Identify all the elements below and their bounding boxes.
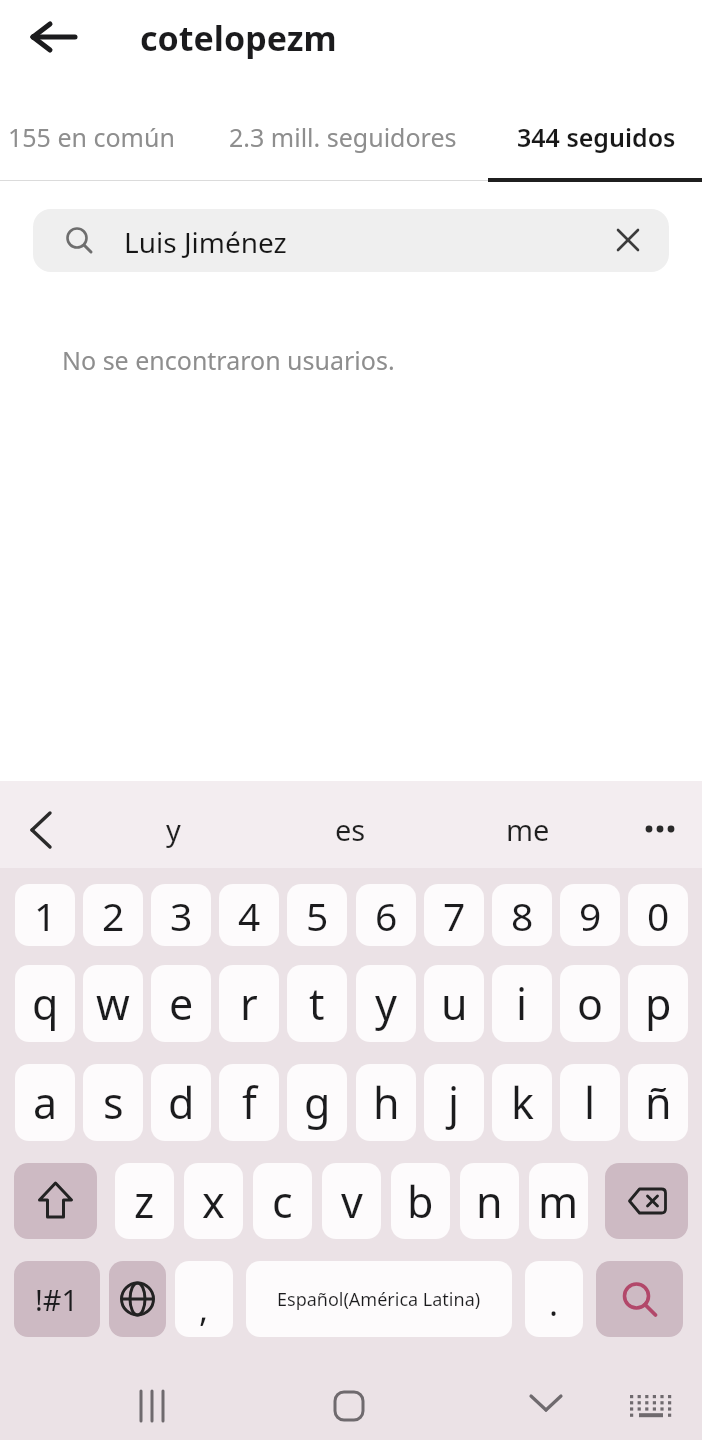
staticText: s xyxy=(103,1073,124,1132)
staticText: es xyxy=(335,810,366,849)
staticText: 8 xyxy=(511,889,534,942)
staticText: a xyxy=(33,1073,58,1132)
button[interactable]: x xyxy=(184,1163,243,1239)
button[interactable]: g xyxy=(287,1064,347,1141)
staticText: p xyxy=(645,974,672,1033)
staticText: ñ xyxy=(645,1073,672,1132)
button[interactable]: t xyxy=(287,965,347,1042)
staticText: d xyxy=(168,1073,195,1132)
button[interactable]: 8 xyxy=(492,884,552,946)
button[interactable]: a xyxy=(15,1064,75,1141)
button[interactable] xyxy=(33,209,669,272)
staticText: , xyxy=(199,1286,209,1332)
button[interactable]: 5 xyxy=(287,884,347,946)
button[interactable]: 1 xyxy=(15,884,75,946)
staticText: o xyxy=(577,974,604,1033)
staticText: 2 xyxy=(102,889,125,942)
button[interactable]: h xyxy=(356,1064,416,1141)
button[interactable]: 155 en común xyxy=(0,107,251,167)
button[interactable]: . xyxy=(525,1261,583,1337)
staticText: y xyxy=(166,810,181,849)
button[interactable]: e xyxy=(151,965,211,1042)
staticText: !#1 xyxy=(35,1280,79,1319)
staticText: g xyxy=(304,1073,331,1132)
button[interactable]: Español(América Latina) xyxy=(246,1261,512,1337)
button[interactable] xyxy=(30,811,52,849)
staticText: . xyxy=(549,1280,559,1326)
button[interactable]: o xyxy=(560,965,620,1042)
button[interactable]: s xyxy=(83,1064,143,1141)
staticText: 4 xyxy=(238,889,261,942)
button[interactable]: i xyxy=(492,965,552,1042)
button[interactable]: 2 xyxy=(83,884,143,946)
button[interactable]: me xyxy=(368,799,688,859)
staticText: w xyxy=(96,974,130,1033)
button[interactable]: k xyxy=(492,1064,552,1141)
staticText: c xyxy=(272,1172,293,1231)
staticText: Luis Jiménez xyxy=(124,223,287,261)
staticText: 155 en común xyxy=(8,120,175,154)
staticText: y xyxy=(375,974,397,1033)
button[interactable] xyxy=(596,1261,683,1337)
button[interactable] xyxy=(31,22,77,52)
staticText: x xyxy=(202,1172,225,1231)
staticText: cotelopezm xyxy=(140,15,337,61)
button[interactable]: c xyxy=(253,1163,312,1239)
button[interactable]: m xyxy=(529,1163,588,1239)
staticText: 1 xyxy=(34,889,57,942)
button[interactable]: v xyxy=(322,1163,381,1239)
button[interactable] xyxy=(643,822,677,836)
button[interactable]: y xyxy=(356,965,416,1042)
button[interactable]: z xyxy=(115,1163,174,1239)
button[interactable] xyxy=(629,1395,673,1417)
button[interactable]: q xyxy=(15,965,75,1042)
button[interactable]: d xyxy=(151,1064,211,1141)
staticText: 7 xyxy=(443,889,466,942)
button[interactable] xyxy=(14,1163,97,1239)
button[interactable]: p xyxy=(628,965,688,1042)
button[interactable]: ñ xyxy=(628,1064,688,1141)
button[interactable]: 2.3 mill. seguidores xyxy=(183,107,503,167)
button[interactable] xyxy=(529,1393,563,1413)
button[interactable]: y xyxy=(13,799,333,859)
button[interactable]: l xyxy=(560,1064,620,1141)
staticText: l xyxy=(584,1073,596,1132)
button[interactable] xyxy=(136,1389,170,1423)
button[interactable]: 9 xyxy=(560,884,620,946)
staticText: z xyxy=(134,1172,155,1231)
button[interactable]: 344 seguidos xyxy=(436,107,702,167)
button[interactable]: es xyxy=(190,799,510,859)
button[interactable]: 3 xyxy=(151,884,211,946)
staticText: t xyxy=(309,974,325,1033)
staticText: 5 xyxy=(306,889,329,942)
button[interactable] xyxy=(333,1390,365,1422)
staticText: Español(América Latina) xyxy=(277,1287,481,1312)
staticText: q xyxy=(32,974,59,1033)
button[interactable] xyxy=(617,229,639,251)
button[interactable]: 4 xyxy=(219,884,279,946)
button[interactable]: r xyxy=(219,965,279,1042)
button[interactable]: , xyxy=(175,1261,233,1337)
button[interactable]: f xyxy=(219,1064,279,1141)
staticText: 3 xyxy=(170,889,193,942)
button[interactable]: 7 xyxy=(424,884,484,946)
staticText: 6 xyxy=(375,889,398,942)
button[interactable]: j xyxy=(424,1064,484,1141)
staticText: 344 seguidos xyxy=(517,120,676,154)
button[interactable]: u xyxy=(424,965,484,1042)
staticText: No se encontraron usuarios. xyxy=(62,343,395,377)
staticText: r xyxy=(240,974,258,1033)
staticText: m xyxy=(538,1172,579,1231)
staticText: n xyxy=(476,1172,503,1231)
button[interactable]: n xyxy=(460,1163,519,1239)
button[interactable] xyxy=(109,1261,166,1337)
staticText: v xyxy=(341,1172,363,1231)
staticText: b xyxy=(407,1172,434,1231)
button[interactable]: 0 xyxy=(628,884,688,946)
button[interactable] xyxy=(605,1163,688,1239)
button[interactable]: w xyxy=(83,965,143,1042)
button[interactable]: !#1 xyxy=(14,1261,100,1337)
button[interactable]: 6 xyxy=(356,884,416,946)
staticText: me xyxy=(506,810,550,849)
button[interactable]: b xyxy=(391,1163,450,1239)
